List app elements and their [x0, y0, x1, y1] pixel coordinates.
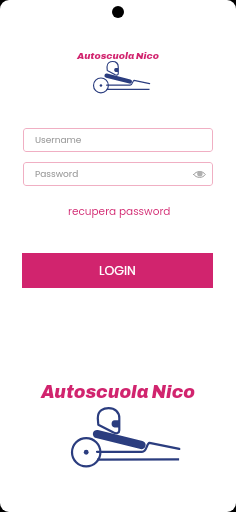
staticText: LOGIN [99, 262, 136, 279]
button[interactable]: Username [23, 128, 213, 152]
button[interactable]: recupera password [64, 202, 175, 221]
staticText: Autoscuola Nico [0, 383, 236, 402]
button[interactable]: LOGIN [22, 253, 213, 288]
staticText: recupera password [68, 204, 171, 219]
staticText: Password [35, 168, 79, 181]
staticText: Autoscuola Nico [0, 51, 236, 61]
button[interactable]: Password [23, 162, 213, 186]
staticText: Username [35, 134, 82, 147]
button[interactable]: Show password [190, 165, 208, 183]
